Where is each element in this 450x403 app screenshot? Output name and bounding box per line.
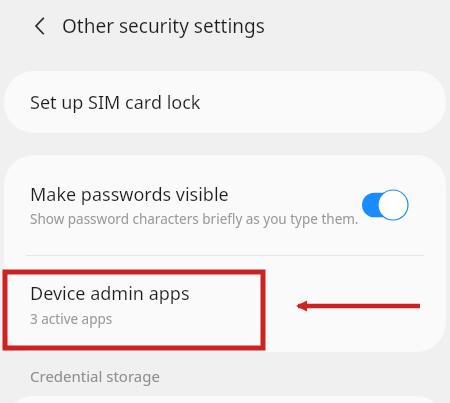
button[interactable]: Make passwords visible xyxy=(4,155,446,255)
button[interactable]: Back xyxy=(22,8,58,44)
button[interactable]: Device admin apps xyxy=(4,256,446,352)
button[interactable]: Make passwords visible toggle xyxy=(362,190,408,220)
staticText: Set up SIM card lock xyxy=(30,90,201,115)
staticText: Show password characters briefly as you … xyxy=(30,210,359,228)
staticText: Other security settings xyxy=(62,13,265,39)
staticText: 3 active apps xyxy=(30,310,113,328)
button[interactable]: Set up SIM card lock xyxy=(4,71,446,133)
staticText: Device admin apps xyxy=(30,281,190,306)
staticText: Credential storage xyxy=(30,366,160,386)
staticText: Make passwords visible xyxy=(30,182,229,207)
